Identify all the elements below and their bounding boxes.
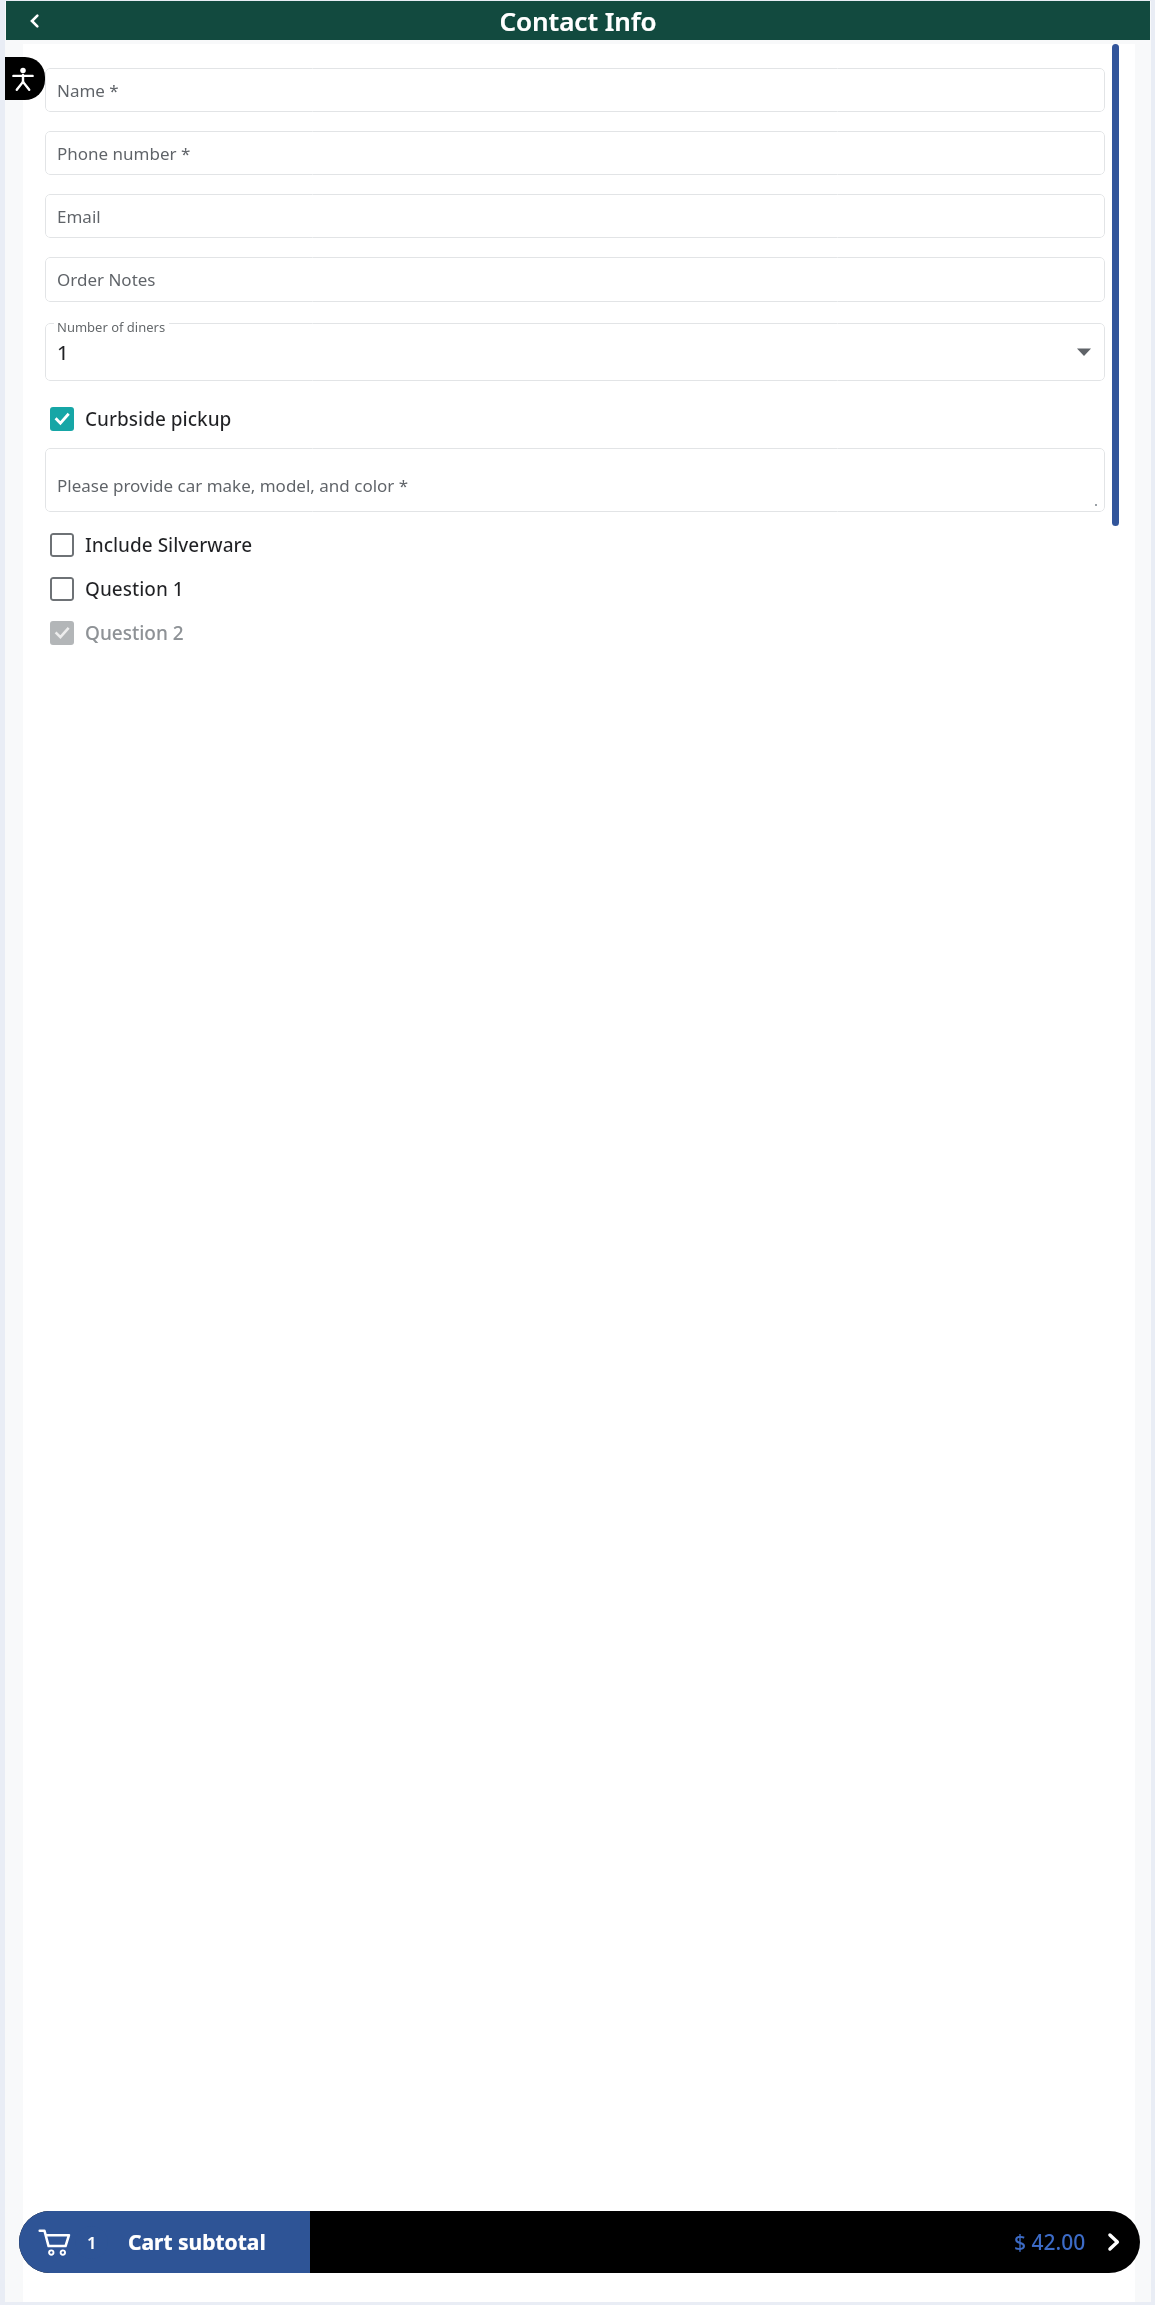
staticText: Email xyxy=(57,205,101,228)
button[interactable]: Email xyxy=(45,194,1105,238)
button[interactable]: Include Silverware xyxy=(45,528,1105,562)
button[interactable]: Please provide car make, model, and colo… xyxy=(45,448,1105,512)
staticText: Include Silverware xyxy=(85,532,253,558)
other: Continue xyxy=(1102,2231,1124,2253)
staticText: Phone number * xyxy=(57,142,191,165)
button[interactable]: Phone number * xyxy=(45,131,1105,175)
button[interactable]: Back xyxy=(18,4,52,38)
button[interactable]: Accessibility options xyxy=(5,57,45,100)
staticText: Question 2 xyxy=(85,620,184,646)
staticText: Name * xyxy=(57,79,119,102)
staticText: Number of diners xyxy=(57,318,166,332)
staticText: Please provide car make, model, and colo… xyxy=(57,474,409,497)
button[interactable]: Question 2 xyxy=(45,616,1105,650)
button[interactable]: 1 xyxy=(19,2211,1140,2273)
staticText: Cart subtotal xyxy=(128,2228,266,2257)
button[interactable]: Question 1 xyxy=(45,572,1105,606)
staticText: $ 42.00 xyxy=(1014,2228,1086,2257)
staticText: Contact Info xyxy=(6,3,1150,38)
staticText: Order Notes xyxy=(57,268,156,291)
staticText: 1 xyxy=(87,2231,97,2254)
button[interactable]: Order Notes xyxy=(45,257,1105,302)
button[interactable]: 1 xyxy=(45,323,1105,381)
staticText: Question 1 xyxy=(85,576,184,602)
button[interactable]: Name * xyxy=(45,68,1105,112)
staticText: Curbside pickup xyxy=(85,406,232,432)
button[interactable]: Curbside pickup xyxy=(45,402,1105,436)
staticText: 1 xyxy=(57,339,69,366)
